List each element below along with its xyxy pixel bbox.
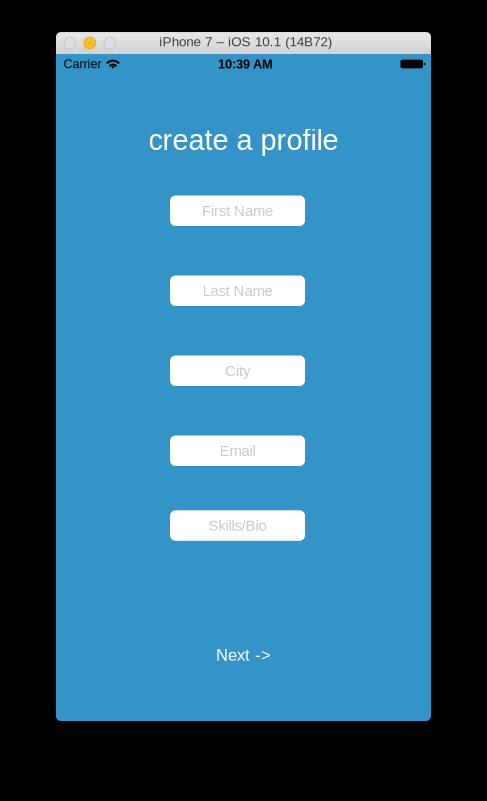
button[interactable]: Zoom window bbox=[104, 37, 116, 49]
staticText: iPhone 7 – iOS 10.1 (14B72) bbox=[159, 34, 332, 49]
button[interactable]: Minimise window bbox=[84, 37, 96, 49]
button[interactable]: Close window bbox=[64, 37, 76, 49]
staticText: City bbox=[225, 362, 250, 379]
staticText: Carrier bbox=[63, 57, 101, 71]
button[interactable]: Next -> bbox=[198, 642, 288, 668]
button[interactable]: Last Name bbox=[170, 275, 305, 306]
staticText: Next -> bbox=[216, 646, 271, 664]
staticText: 10:39 AM bbox=[218, 57, 273, 71]
staticText: Email bbox=[219, 442, 255, 459]
button[interactable]: Email bbox=[170, 435, 305, 466]
staticText: First Name bbox=[202, 202, 273, 219]
staticText: create a profile bbox=[148, 124, 338, 156]
staticText: Last Name bbox=[202, 282, 272, 299]
button[interactable]: Skills/Bio bbox=[170, 510, 305, 541]
button[interactable]: First Name bbox=[170, 195, 305, 226]
staticText: Skills/Bio bbox=[208, 517, 266, 534]
button[interactable]: City bbox=[170, 355, 305, 386]
